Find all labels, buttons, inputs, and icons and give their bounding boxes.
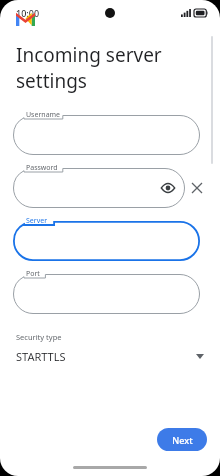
button[interactable]: Username	[13, 115, 200, 155]
staticText: Password	[26, 163, 58, 173]
button[interactable]: Security type	[0, 332, 220, 364]
button[interactable]: Server	[13, 221, 200, 261]
staticText: Next	[172, 434, 193, 446]
button[interactable]: Port	[13, 274, 200, 314]
button[interactable]: Show password	[159, 179, 177, 197]
button[interactable]: Clear password	[185, 176, 209, 200]
staticText: Security type	[16, 332, 62, 342]
button[interactable]: Password	[13, 168, 185, 208]
staticText: Server	[26, 216, 48, 226]
button[interactable]: Next	[157, 428, 207, 451]
staticText: Incoming server settings	[16, 42, 186, 93]
staticText: 10:00	[16, 7, 40, 19]
staticText: Port	[26, 269, 40, 279]
staticText: STARTTLS	[16, 349, 66, 364]
staticText: Username	[26, 110, 61, 120]
